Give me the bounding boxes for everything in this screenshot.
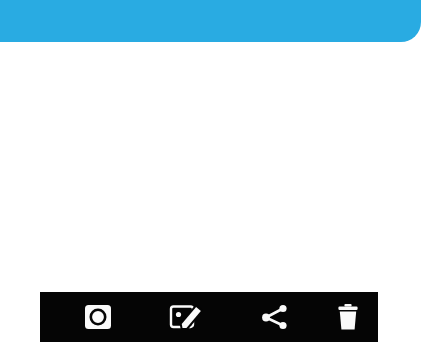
button[interactable]: Edit image bbox=[145, 292, 227, 342]
button[interactable]: Share bbox=[233, 292, 317, 342]
button[interactable]: Delete bbox=[318, 292, 378, 342]
button[interactable]: Capture photo bbox=[59, 292, 137, 342]
